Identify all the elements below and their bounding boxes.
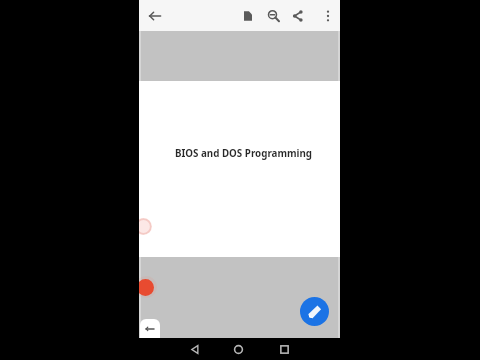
staticText: BIOS and DOS Programming: [143, 147, 340, 160]
button[interactable]: More options: [319, 7, 337, 25]
button[interactable]: Share: [289, 7, 307, 25]
button[interactable]: Edit: [300, 297, 329, 326]
button[interactable]: Page view: [239, 7, 257, 25]
button[interactable]: Home: [232, 343, 245, 356]
button[interactable]: Navigate up: [146, 7, 164, 25]
button[interactable]: Back: [140, 319, 160, 338]
button[interactable]: Zoom out: [264, 7, 282, 25]
button[interactable]: Recent apps: [278, 343, 291, 356]
button[interactable]: Back: [189, 343, 202, 356]
